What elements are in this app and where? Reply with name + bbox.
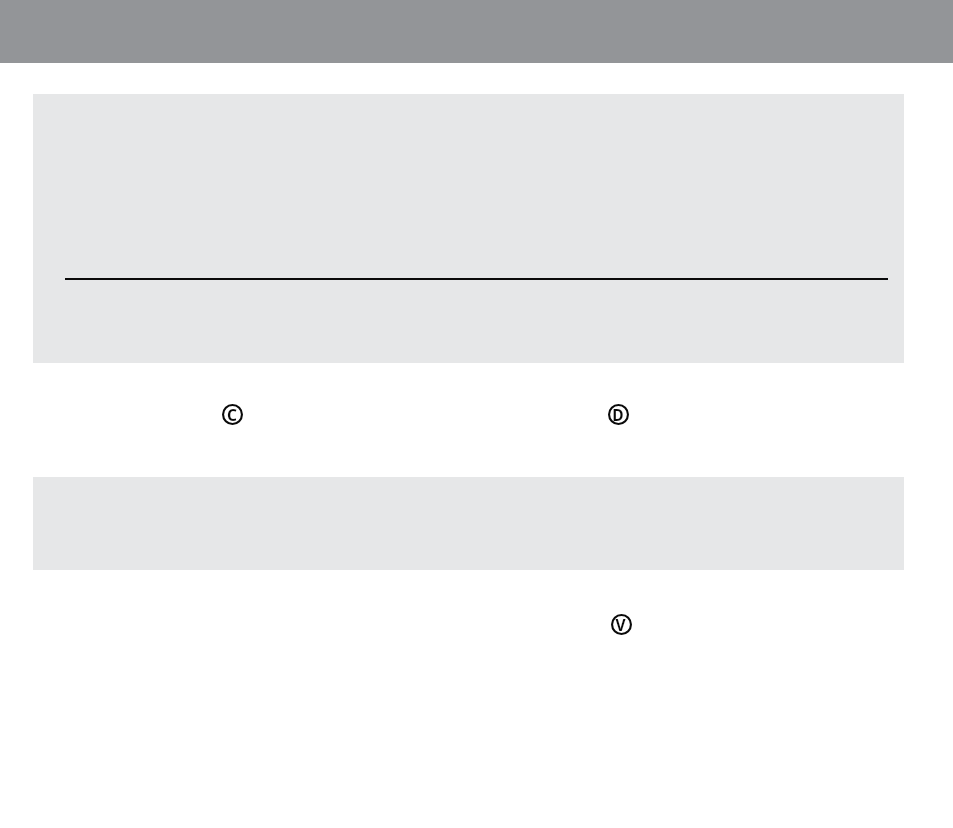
button[interactable]: Copyright	[222, 404, 243, 425]
button[interactable]: Verified	[611, 614, 632, 635]
button[interactable]: Document	[608, 404, 629, 425]
staticText: C	[227, 404, 237, 425]
button[interactable]	[33, 94, 904, 363]
staticText: V	[615, 614, 626, 635]
staticText: D	[612, 404, 624, 425]
